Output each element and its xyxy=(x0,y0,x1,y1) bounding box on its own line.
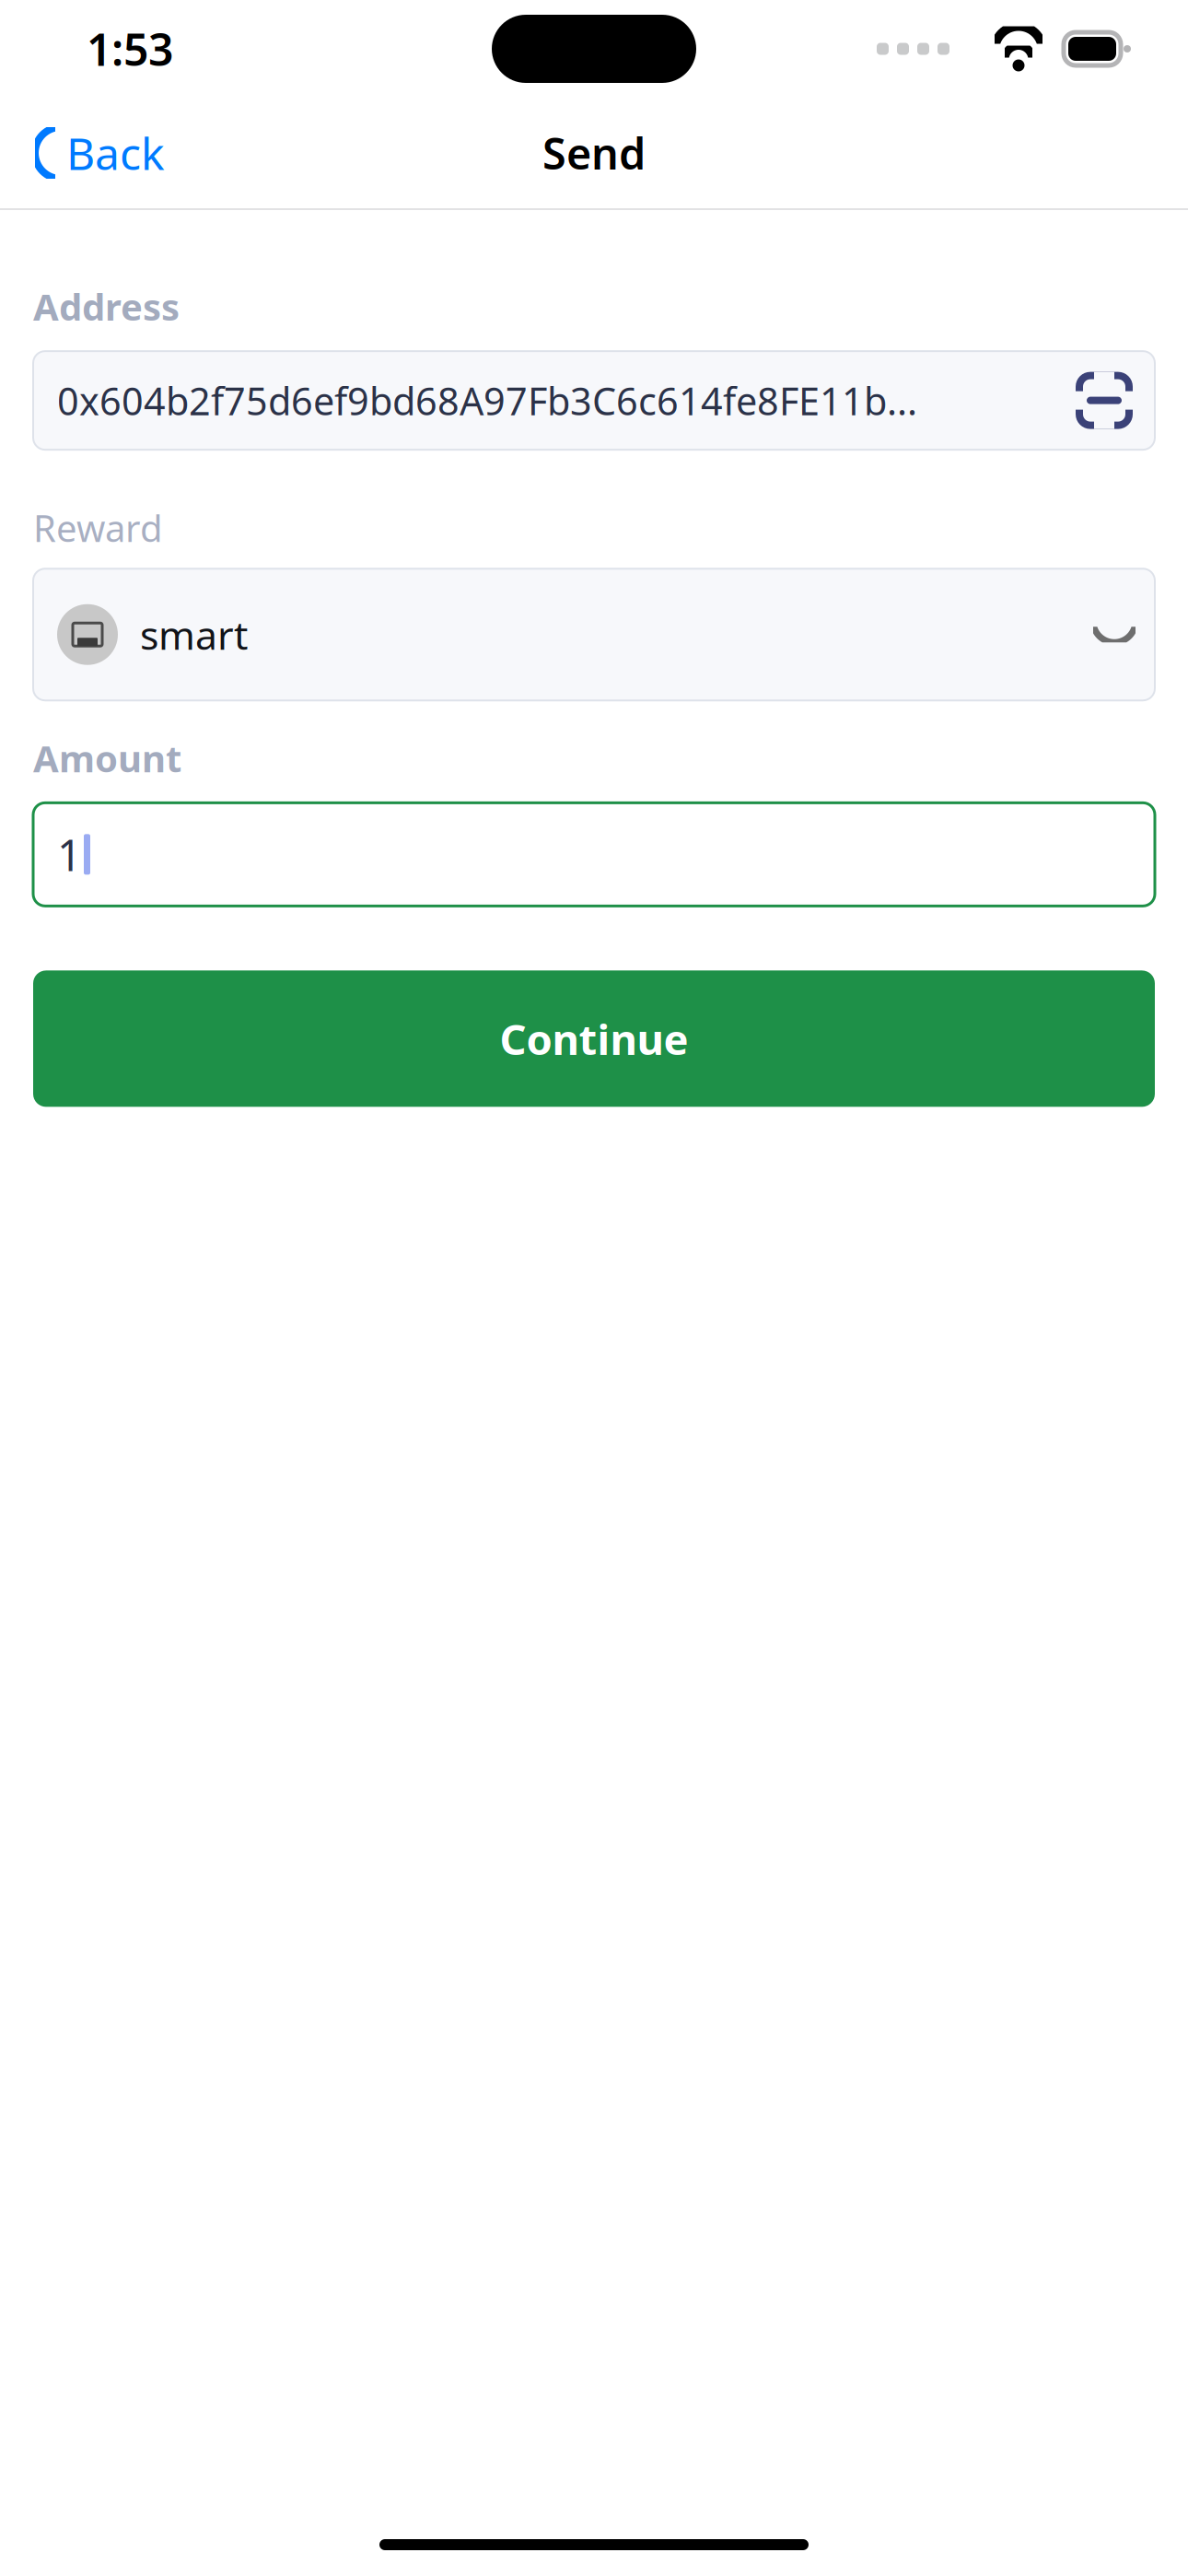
staticText: 1:53 xyxy=(87,19,173,78)
button[interactable]: Continue xyxy=(33,971,1155,1107)
button[interactable]: smart xyxy=(33,569,1155,700)
button[interactable]: 0x604b2f75d6ef9bd68A97Fb3C6c614fe8FE11b.… xyxy=(33,351,1155,450)
staticText: smart xyxy=(140,608,248,661)
staticText: 0x604b2f75d6ef9bd68A97Fb3C6c614fe8FE11b.… xyxy=(57,375,917,426)
staticText: Reward xyxy=(33,503,163,552)
button[interactable]: Back xyxy=(15,111,185,195)
staticText: Address xyxy=(33,282,180,331)
staticText: Amount xyxy=(33,734,181,782)
staticText: Back xyxy=(66,124,165,182)
staticText: 1 xyxy=(57,826,82,883)
staticText: Send xyxy=(542,124,646,181)
button[interactable]: 1 xyxy=(33,803,1155,906)
staticText: Continue xyxy=(500,1011,688,1066)
